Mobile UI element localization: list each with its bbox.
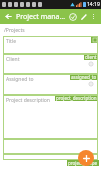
- button[interactable]: [3, 139, 98, 154]
- button[interactable]: Assigned to: [3, 74, 98, 95]
- staticText: Client: [6, 56, 20, 63]
- button[interactable]: Project description: [3, 95, 98, 139]
- staticText: Assigned to: [6, 76, 34, 83]
- button[interactable]: client: [85, 54, 97, 60]
- button[interactable]: assigned_to: [71, 74, 97, 80]
- staticText: /Projects: [4, 27, 25, 34]
- button[interactable]: Title: [3, 36, 98, 54]
- staticText: project_description: [56, 95, 97, 101]
- button[interactable]: Back: [3, 11, 14, 22]
- staticText: project_scope: [68, 160, 98, 166]
- staticText: client: [85, 54, 97, 60]
- button[interactable]: project_scope: [68, 160, 98, 166]
- button[interactable]: project_description: [56, 95, 97, 101]
- button[interactable]: More options: [89, 12, 98, 21]
- staticText: assigned_to: [71, 74, 97, 80]
- button[interactable]: Add: [78, 150, 94, 166]
- staticText: 14:19: [87, 1, 100, 8]
- staticText: Title: [6, 38, 16, 45]
- staticText: Project description: [6, 97, 50, 104]
- button[interactable]: Title field action: [91, 36, 98, 43]
- button[interactable]: Edit: [78, 11, 89, 22]
- button[interactable]: Client: [3, 54, 98, 74]
- button[interactable]: Save: [67, 11, 78, 22]
- staticText: Project manage...: [16, 12, 67, 22]
